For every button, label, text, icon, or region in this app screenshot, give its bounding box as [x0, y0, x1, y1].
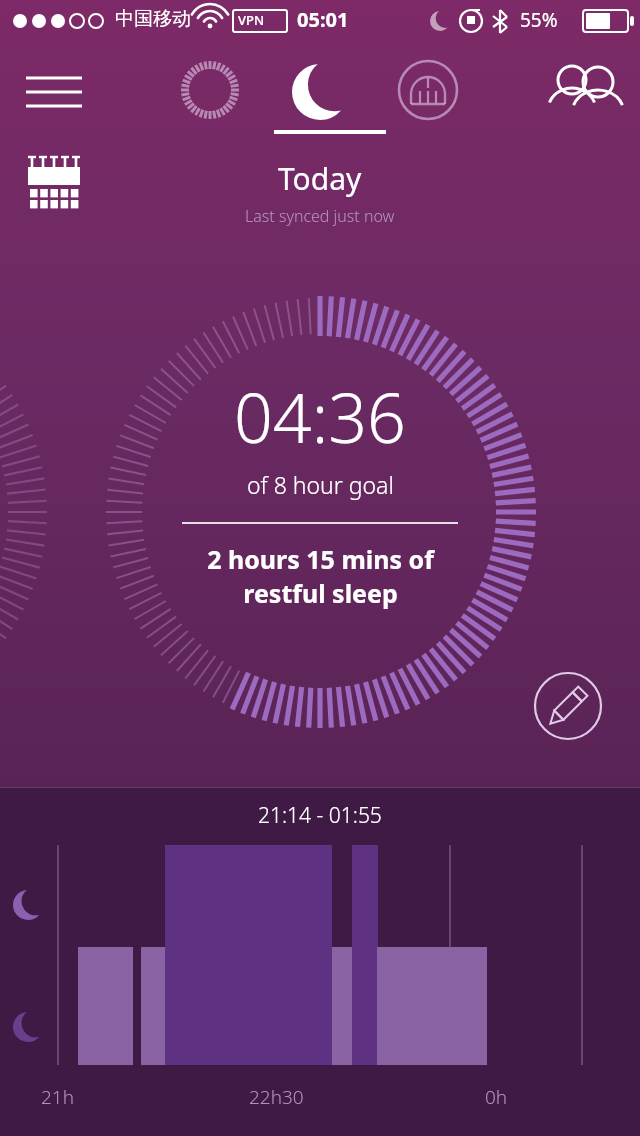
button[interactable]: Friends	[540, 58, 624, 122]
staticText: 0h	[485, 1084, 508, 1110]
staticText: 05:01	[297, 6, 349, 33]
staticText: VPN	[238, 11, 265, 29]
button[interactable]: Calendar	[22, 155, 86, 211]
button[interactable]: Sleep	[280, 58, 360, 134]
staticText: 21:14 - 01:55	[258, 801, 382, 830]
staticText: Today	[278, 158, 362, 199]
staticText: Last synced just now	[245, 205, 395, 227]
button[interactable]: Edit sleep	[533, 671, 603, 741]
staticText: 22h30	[249, 1084, 304, 1110]
staticText: 中国移动	[115, 7, 191, 31]
staticText: 2 hours 15 mins of restful sleep	[207, 542, 434, 610]
button[interactable]: 21:14 - 01:55	[0, 787, 640, 1136]
staticText: 21h	[41, 1084, 75, 1110]
button[interactable]: Menu	[14, 62, 94, 118]
button[interactable]: Weight	[388, 58, 468, 122]
staticText: 04:36	[234, 370, 406, 463]
button[interactable]: Activity	[170, 58, 250, 122]
staticText: 55%	[520, 7, 558, 33]
staticText: of 8 hour goal	[247, 469, 394, 500]
